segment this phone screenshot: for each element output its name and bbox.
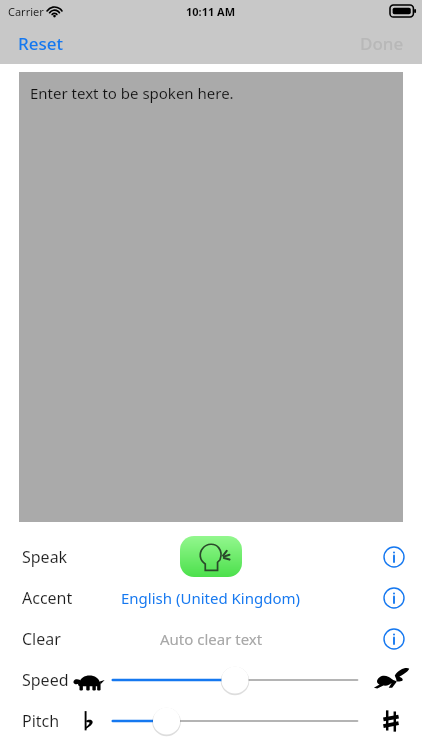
staticText: Speak bbox=[22, 546, 68, 568]
button[interactable]: Done bbox=[352, 26, 412, 61]
staticText: Reset bbox=[18, 32, 64, 55]
button[interactable]: Info about Clear bbox=[379, 624, 409, 654]
button[interactable]: Speak bbox=[180, 536, 242, 577]
staticText: Accent bbox=[22, 587, 73, 609]
button[interactable] bbox=[110, 663, 360, 697]
staticText: Speed bbox=[22, 669, 69, 691]
button[interactable]: Auto clear text bbox=[156, 625, 267, 653]
button[interactable]: Reset bbox=[10, 26, 72, 61]
staticText: Auto clear text bbox=[160, 629, 263, 649]
staticText: English (United Kingdom) bbox=[121, 588, 301, 608]
button[interactable]: Info about Speak bbox=[379, 542, 409, 572]
staticText: Done bbox=[360, 32, 404, 55]
staticText: Clear bbox=[22, 628, 61, 650]
staticText: Enter text to be spoken here. bbox=[30, 83, 234, 103]
staticText: Carrier bbox=[8, 4, 44, 19]
button[interactable]: Enter text to be spoken here. bbox=[19, 72, 403, 522]
staticText: 10:11 AM bbox=[186, 4, 236, 19]
button[interactable] bbox=[110, 704, 360, 738]
button[interactable]: English (United Kingdom) bbox=[117, 584, 305, 612]
button[interactable]: Info about Accent bbox=[379, 583, 409, 613]
staticText: Pitch bbox=[22, 710, 60, 732]
